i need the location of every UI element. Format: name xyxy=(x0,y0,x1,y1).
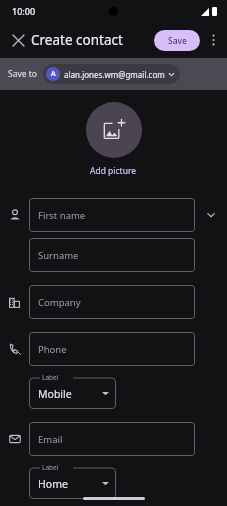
staticText: Phone xyxy=(38,343,67,356)
staticText: Add picture xyxy=(90,165,137,177)
staticText: Label xyxy=(42,373,59,382)
button[interactable]: Surname xyxy=(29,238,195,272)
button[interactable]: Add picture xyxy=(0,102,227,177)
staticText: Mobile xyxy=(38,387,102,401)
button[interactable]: Mobile xyxy=(29,373,116,409)
staticText: Save to xyxy=(8,68,37,80)
staticText: 10:00 xyxy=(12,5,36,17)
staticText: First name xyxy=(38,209,86,222)
button[interactable]: Company xyxy=(29,285,195,319)
button[interactable]: Email xyxy=(29,422,195,456)
button[interactable]: Expand name fields xyxy=(195,198,227,232)
staticText: Email xyxy=(38,433,63,446)
staticText: Home xyxy=(38,477,102,491)
button[interactable]: More options xyxy=(202,29,224,51)
staticText: A xyxy=(51,69,56,79)
staticText: alan.jones.wm@gmail.com xyxy=(64,69,165,80)
button[interactable]: Save xyxy=(154,30,200,51)
button[interactable]: First name xyxy=(29,198,195,232)
staticText: Save xyxy=(168,35,187,47)
staticText: Label xyxy=(42,463,59,472)
staticText: Company xyxy=(38,296,81,309)
button[interactable]: Close xyxy=(5,27,31,53)
staticText: Create contact xyxy=(31,31,123,49)
button[interactable]: Phone xyxy=(29,332,195,366)
button[interactable]: A xyxy=(43,64,180,84)
staticText: Surname xyxy=(38,249,79,262)
button[interactable]: Home xyxy=(29,463,116,499)
